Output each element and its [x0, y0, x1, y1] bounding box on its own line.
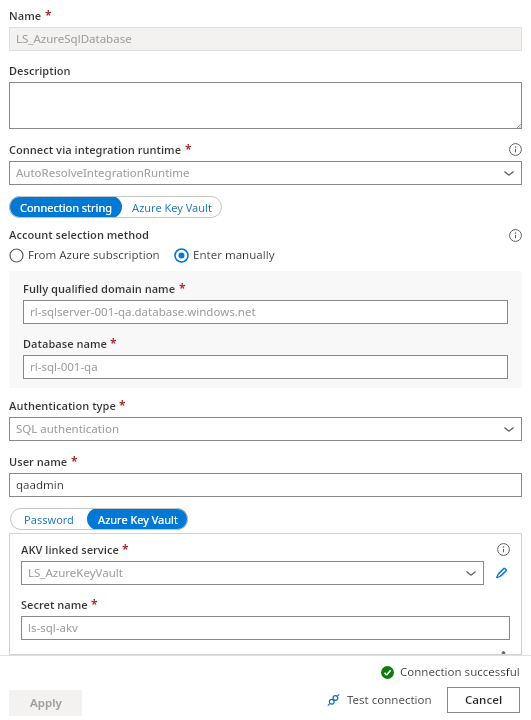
button[interactable]: Enter manually [174, 247, 275, 263]
staticText: rl-sqlserver-001-qa.database.windows.net [30, 304, 501, 320]
staticText: Password [24, 512, 74, 527]
staticText: Azure Key Vault [132, 200, 212, 215]
staticText: Account selection method [9, 227, 149, 242]
button[interactable]: ls-sql-akv [21, 616, 510, 640]
button[interactable]: Connection string [9, 196, 122, 218]
button[interactable]: More information [508, 142, 522, 156]
button[interactable]: Apply [9, 690, 82, 716]
button[interactable]: AutoResolveIntegrationRuntime [9, 161, 522, 185]
button[interactable]: Test connection [324, 688, 435, 712]
staticText: LS_AzureKeyVault [28, 565, 465, 581]
button[interactable]: rl-sqlserver-001-qa.database.windows.net [23, 300, 508, 324]
button[interactable]: Azure Key Vault [87, 508, 188, 530]
staticText: Authentication type [9, 398, 116, 413]
staticText: * [110, 335, 117, 351]
staticText: Test connection [347, 692, 432, 708]
staticText: Enter manually [193, 247, 275, 263]
staticText: * [45, 7, 52, 23]
button[interactable]: LS_AzureSqlDatabase [9, 27, 522, 51]
button[interactable]: More information [508, 228, 522, 242]
button[interactable]: More information [496, 651, 510, 655]
staticText: * [185, 141, 192, 157]
button[interactable]: From Azure subscription [9, 247, 160, 263]
button[interactable]: Azure Key Vault [122, 196, 222, 218]
staticText: User name [9, 454, 68, 469]
staticText: * [91, 596, 98, 612]
staticText: Azure Key Vault [98, 512, 178, 527]
staticText: AutoResolveIntegrationRuntime [16, 165, 503, 181]
staticText: qaadmin [16, 477, 515, 493]
button[interactable]: Cancel [447, 687, 520, 713]
staticText: Connection string [20, 200, 112, 215]
staticText: Connection successful [400, 664, 520, 680]
staticText: Connect via integration runtime [9, 142, 182, 157]
staticText: Secret name [21, 597, 88, 612]
staticText: * [122, 541, 129, 557]
button[interactable]: Password [10, 508, 87, 530]
staticText: SQL authentication [16, 421, 503, 437]
button[interactable]: qaadmin [9, 473, 522, 497]
button[interactable]: Edit linked service [492, 564, 510, 582]
staticText: Fully qualified domain name [23, 281, 176, 296]
staticText: Name [9, 8, 42, 23]
staticText: Apply [30, 695, 62, 711]
staticText: Database name [23, 336, 107, 351]
staticText: * [71, 453, 78, 469]
button[interactable] [9, 82, 522, 129]
staticText: AKV linked service [21, 542, 119, 557]
button[interactable]: rl-sql-001-qa [23, 355, 508, 379]
staticText: * [179, 280, 186, 296]
staticText: Description [9, 63, 71, 78]
staticText: rl-sql-001-qa [30, 359, 501, 375]
staticText: Secret version [21, 651, 97, 655]
staticText: Cancel [465, 692, 503, 708]
button[interactable]: LS_AzureKeyVault [21, 561, 484, 585]
staticText: LS_AzureSqlDatabase [16, 31, 515, 47]
staticText: ls-sql-akv [28, 620, 503, 636]
staticText: From Azure subscription [28, 247, 160, 263]
button[interactable]: SQL authentication [9, 417, 522, 441]
button[interactable]: More information [496, 542, 510, 556]
staticText: * [119, 397, 126, 413]
